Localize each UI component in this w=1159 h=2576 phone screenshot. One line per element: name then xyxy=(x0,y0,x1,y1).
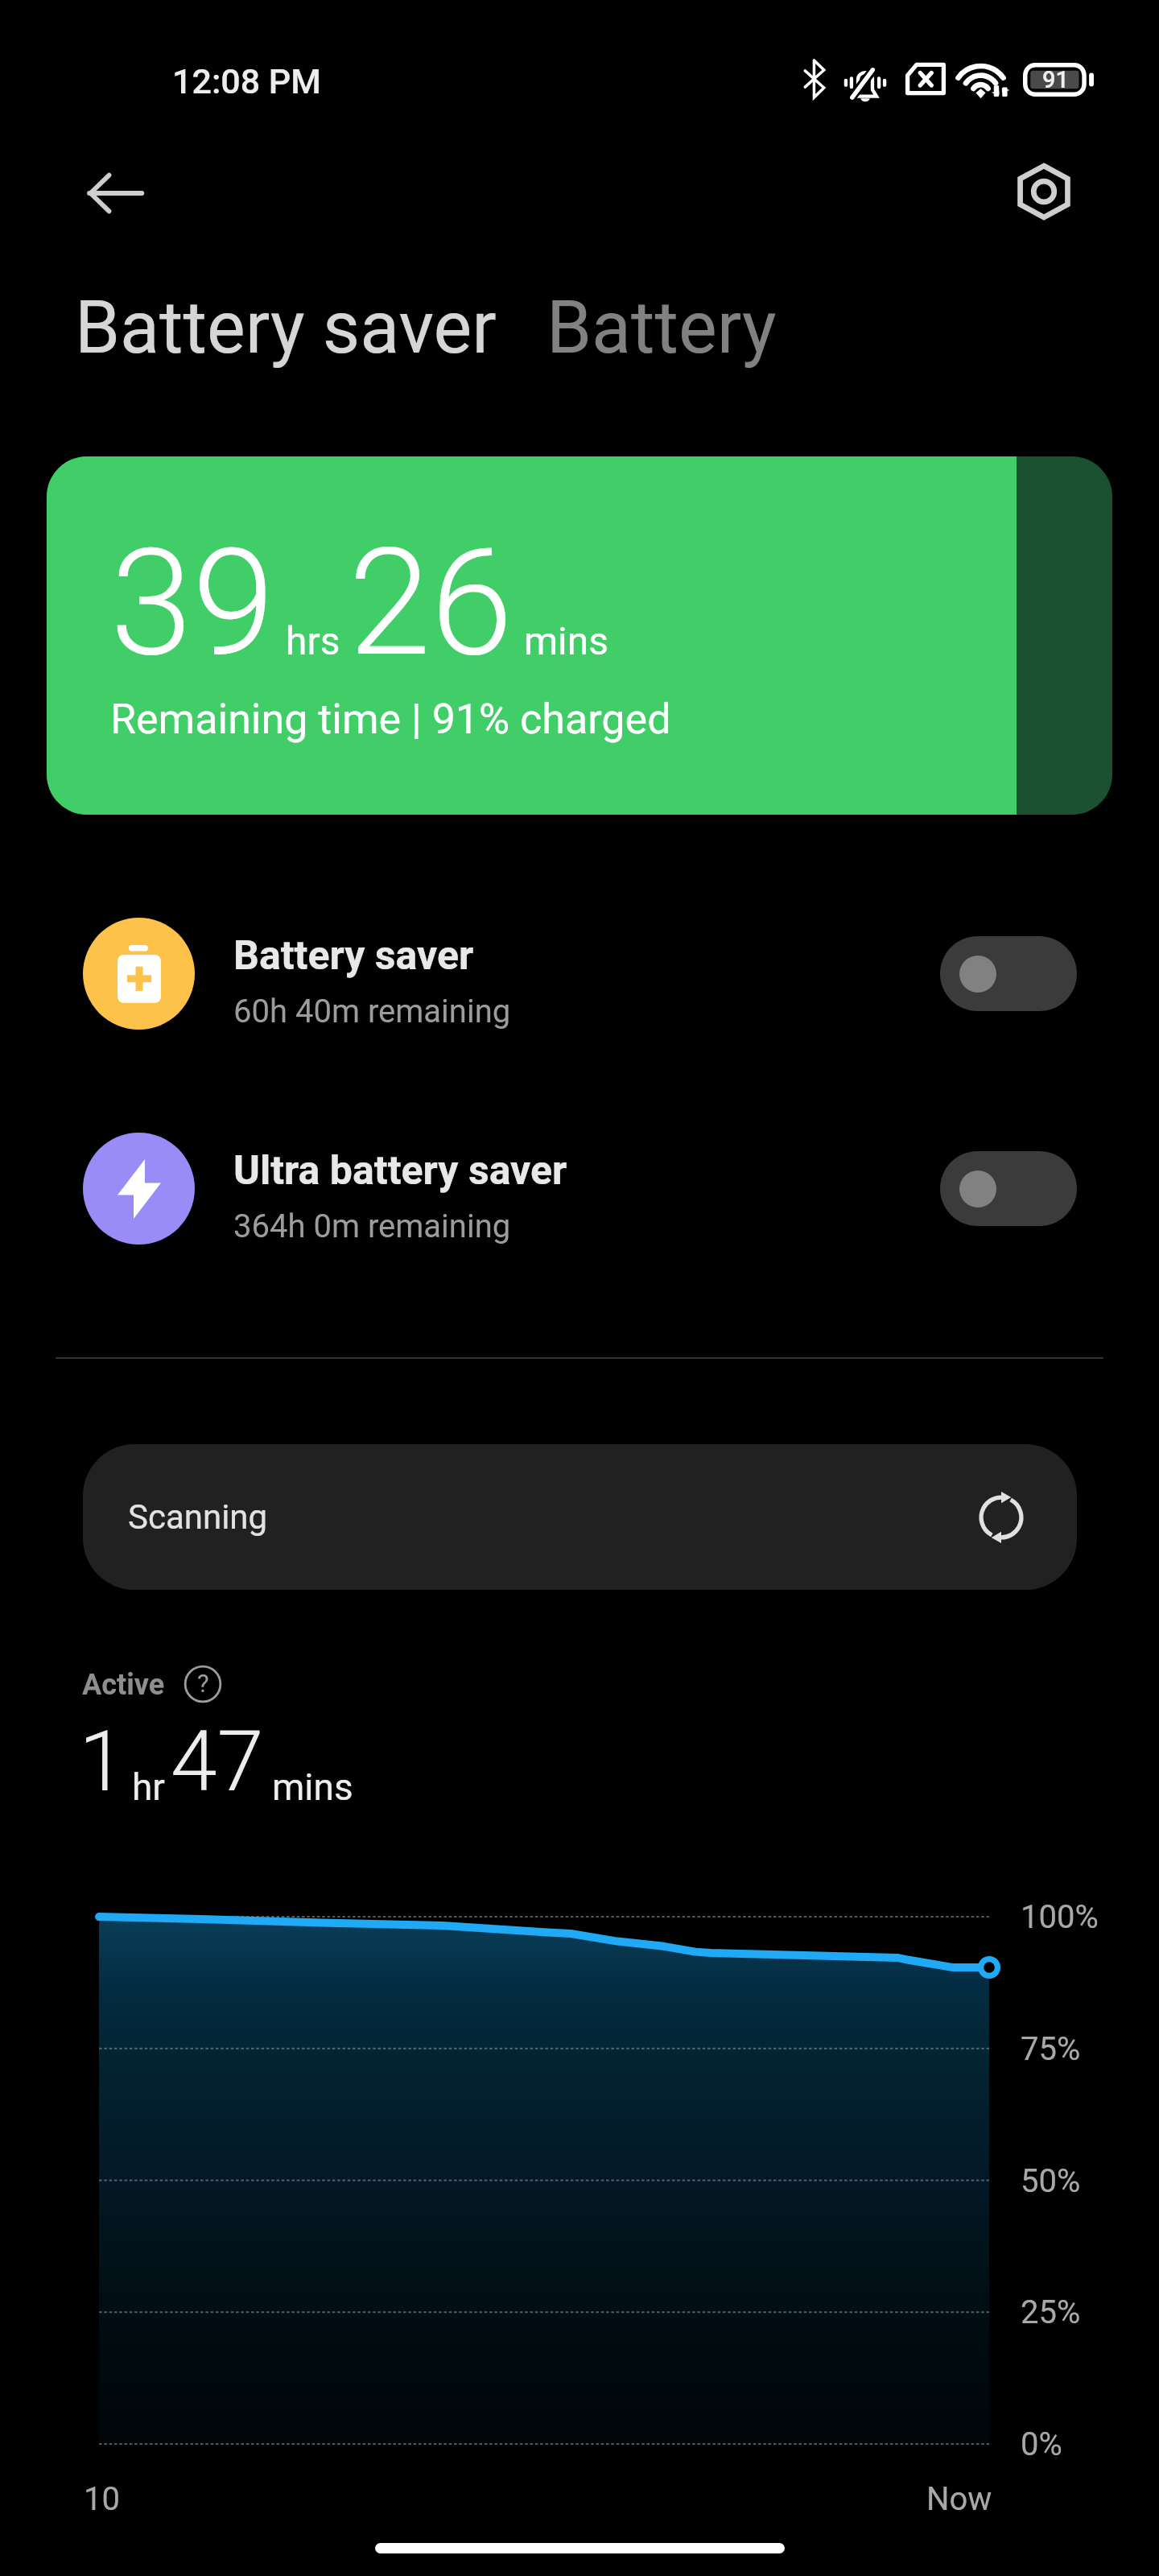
staticText: 0% xyxy=(1021,2425,1062,2463)
staticText: hr xyxy=(132,1765,165,1809)
staticText: Ultra battery saver xyxy=(233,1147,567,1195)
staticText: 10 xyxy=(84,2480,120,2518)
staticText: 47 xyxy=(171,1713,264,1811)
staticText: 364h 0m remaining xyxy=(233,1207,511,1245)
button[interactable]: 39 xyxy=(47,456,1112,815)
button[interactable]: Help xyxy=(180,1662,225,1707)
staticText: 91 xyxy=(1042,66,1069,93)
staticText: Scanning xyxy=(128,1497,268,1537)
staticText: Battery saver xyxy=(233,932,474,980)
button[interactable]: Toggle Ultra battery saver xyxy=(940,1151,1077,1226)
staticText: Battery saver xyxy=(75,286,497,370)
staticText: mins xyxy=(272,1765,353,1809)
staticText: 50% xyxy=(1021,2162,1081,2200)
button[interactable]: Ultra battery saver xyxy=(0,1124,1159,1253)
button[interactable]: Settings xyxy=(1005,153,1083,230)
staticText: 25% xyxy=(1021,2293,1081,2331)
button[interactable]: Battery xyxy=(547,286,777,370)
staticText: Remaining time | 91% charged xyxy=(110,695,671,744)
staticText: 12:08 PM xyxy=(172,61,322,101)
staticText: hrs xyxy=(286,618,340,663)
staticText: 39 xyxy=(110,516,275,690)
staticText: Active xyxy=(82,1668,165,1702)
staticText: 26 xyxy=(349,516,514,690)
button[interactable]: Back xyxy=(76,155,154,232)
staticText: 1 xyxy=(79,1713,126,1811)
staticText: ? xyxy=(197,1669,209,1698)
staticText: Battery xyxy=(547,286,777,370)
button[interactable]: Scanning xyxy=(83,1444,1077,1590)
button[interactable]: Battery saver xyxy=(75,286,497,370)
staticText: 60h 40m remaining xyxy=(233,993,511,1030)
staticText: 75% xyxy=(1021,2030,1081,2068)
staticText: Now xyxy=(926,2480,992,2518)
staticText: 100% xyxy=(1021,1898,1099,1936)
button[interactable]: Toggle Battery saver xyxy=(940,936,1077,1011)
staticText: mins xyxy=(524,618,609,663)
button[interactable]: Battery saver xyxy=(0,909,1159,1038)
